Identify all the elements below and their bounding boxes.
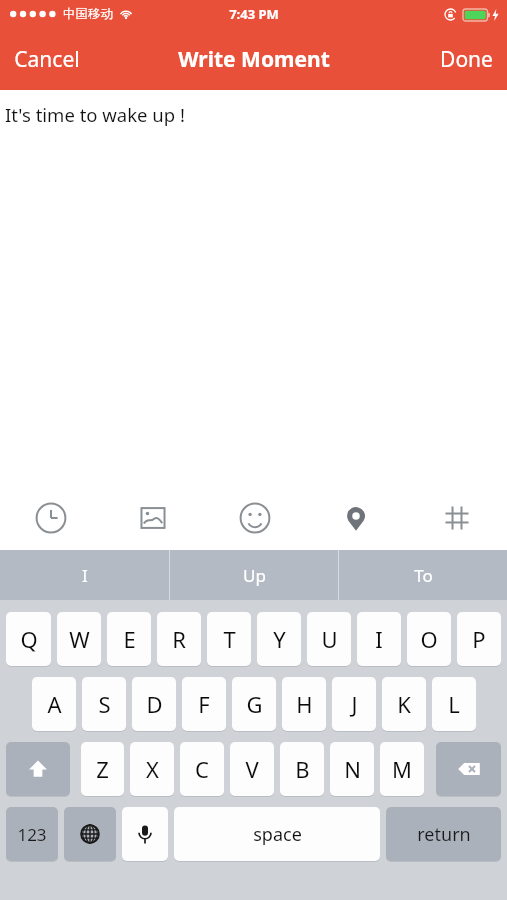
- button[interactable]: X: [130, 742, 174, 796]
- button[interactable]: Dictation: [122, 807, 168, 861]
- button[interactable]: W: [57, 612, 101, 666]
- staticText: U: [321, 624, 338, 654]
- button[interactable]: O: [407, 612, 451, 666]
- staticText: X: [146, 754, 159, 784]
- button[interactable]: Y: [257, 612, 301, 666]
- button[interactable]: space: [174, 807, 380, 861]
- staticText: Y: [273, 624, 286, 654]
- staticText: Q: [20, 624, 38, 654]
- button[interactable]: J: [332, 677, 376, 731]
- staticText: space: [253, 822, 302, 847]
- button[interactable]: N: [330, 742, 374, 796]
- button[interactable]: Backspace: [436, 742, 501, 796]
- button[interactable]: D: [132, 677, 176, 731]
- staticText: Z: [96, 754, 109, 784]
- staticText: 7:43 PM: [229, 5, 279, 23]
- button[interactable]: I: [357, 612, 401, 666]
- button[interactable]: C: [180, 742, 224, 796]
- button[interactable]: E: [107, 612, 151, 666]
- button[interactable]: Z: [81, 742, 124, 796]
- button[interactable]: Done: [426, 35, 507, 84]
- staticText: Done: [440, 45, 493, 74]
- button[interactable]: Switch keyboard: [64, 807, 116, 861]
- button[interactable]: R: [157, 612, 201, 666]
- button[interactable]: T: [207, 612, 251, 666]
- staticText: 123: [17, 823, 47, 846]
- staticText: B: [295, 754, 310, 784]
- button[interactable]: Location: [305, 486, 406, 550]
- button[interactable]: U: [307, 612, 351, 666]
- staticText: J: [351, 689, 358, 719]
- button[interactable]: To: [339, 550, 507, 600]
- staticText: M: [392, 754, 412, 784]
- staticText: R: [172, 624, 186, 654]
- button[interactable]: Cancel: [0, 35, 94, 84]
- button[interactable]: I: [0, 550, 169, 600]
- button[interactable]: 123: [6, 807, 58, 861]
- staticText: K: [397, 689, 411, 719]
- button[interactable]: K: [382, 677, 426, 731]
- staticText: V: [245, 754, 259, 784]
- staticText: Cancel: [14, 45, 80, 74]
- button[interactable]: M: [380, 742, 424, 796]
- staticText: To: [414, 564, 433, 587]
- staticText: S: [98, 689, 111, 719]
- staticText: W: [69, 624, 90, 654]
- staticText: 中国移动: [63, 6, 113, 22]
- button[interactable]: B: [280, 742, 324, 796]
- staticText: H: [296, 689, 313, 719]
- staticText: N: [344, 754, 361, 784]
- button[interactable]: Shift: [6, 742, 70, 796]
- staticText: O: [420, 624, 438, 654]
- button[interactable]: Tag: [406, 486, 507, 550]
- staticText: G: [246, 689, 263, 719]
- button[interactable]: L: [432, 677, 476, 731]
- staticText: T: [223, 624, 236, 654]
- staticText: L: [448, 689, 460, 719]
- button[interactable]: Time: [0, 486, 102, 550]
- button[interactable]: Up: [170, 550, 338, 600]
- button[interactable]: P: [457, 612, 501, 666]
- staticText: F: [198, 689, 210, 719]
- button[interactable]: F: [182, 677, 226, 731]
- staticText: P: [472, 624, 486, 654]
- button[interactable]: return: [386, 807, 501, 861]
- staticText: I: [375, 624, 383, 654]
- button[interactable]: Emoji: [204, 486, 305, 550]
- staticText: D: [146, 689, 163, 719]
- button[interactable]: G: [232, 677, 276, 731]
- button[interactable]: S: [82, 677, 126, 731]
- staticText: C: [195, 754, 209, 784]
- staticText: E: [123, 624, 136, 654]
- button[interactable]: A: [32, 677, 76, 731]
- staticText: Up: [243, 564, 266, 587]
- button[interactable]: V: [230, 742, 274, 796]
- button[interactable]: It's time to wake up !: [0, 90, 507, 486]
- staticText: I: [82, 564, 88, 587]
- staticText: A: [47, 689, 62, 719]
- staticText: It's time to wake up !: [5, 102, 185, 127]
- button[interactable]: Q: [6, 612, 51, 666]
- staticText: Write Moment: [178, 45, 330, 74]
- button[interactable]: H: [282, 677, 326, 731]
- button[interactable]: Photo: [102, 486, 204, 550]
- staticText: return: [417, 822, 471, 847]
